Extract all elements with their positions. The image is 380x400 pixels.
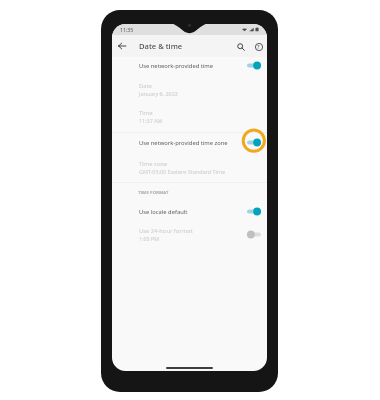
button[interactable]: Time [112, 105, 267, 127]
staticText: Date & time [139, 41, 183, 51]
staticText: Use 24-hour format [139, 227, 193, 235]
button[interactable]: Use locale default [112, 201, 267, 222]
button[interactable]: Use network-provided time [112, 55, 267, 76]
staticText: 1:05 PM [139, 235, 160, 242]
button[interactable]: Date [112, 78, 267, 100]
button[interactable]: Help [252, 40, 265, 53]
staticText: Use network-provided time zone [139, 139, 228, 147]
staticText: Date [139, 82, 152, 90]
button[interactable]: Search [234, 40, 247, 53]
staticText: Use network-provided time [139, 62, 214, 70]
staticText: Use locale default [139, 208, 188, 216]
staticText: ? [257, 43, 260, 51]
button[interactable]: Time zone [112, 156, 267, 178]
staticText: Time [139, 109, 153, 117]
staticText: 11:35 [120, 26, 134, 33]
staticText: 11:37 AM [139, 117, 163, 124]
button[interactable]: Use network-provided time zone [112, 132, 267, 153]
staticText: GMT-05:00 Eastern Standard Time [139, 168, 225, 175]
staticText: Time zone [139, 160, 167, 168]
button[interactable]: Use 24-hour format [112, 222, 267, 246]
staticText: TIME FORMAT [138, 190, 169, 196]
button[interactable]: Back [115, 39, 129, 53]
staticText: January 6, 2022 [139, 90, 178, 97]
